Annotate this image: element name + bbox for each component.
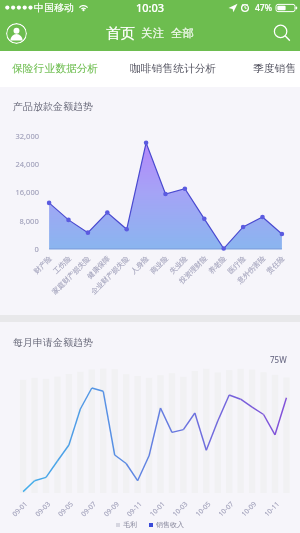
button[interactable]: 保险行业数据分析 bbox=[0, 53, 115, 85]
button[interactable]: Profile bbox=[6, 23, 27, 44]
staticText: 关注 bbox=[141, 26, 164, 40]
button[interactable]: 全部 bbox=[171, 26, 194, 42]
button[interactable]: 首页 bbox=[106, 24, 135, 42]
staticText: 季度销售 bbox=[253, 62, 297, 76]
staticText: 咖啡销售统计分析 bbox=[130, 62, 217, 76]
staticText: 保险行业数据分析 bbox=[12, 62, 99, 76]
button[interactable]: 关注 bbox=[141, 26, 164, 42]
staticText: 10:03 bbox=[136, 0, 165, 15]
button[interactable]: 季度销售 bbox=[237, 53, 300, 85]
button[interactable]: 咖啡销售统计分析 bbox=[114, 53, 233, 85]
staticText: 毛利 bbox=[123, 520, 137, 529]
button[interactable]: Search bbox=[271, 22, 293, 44]
staticText: 首页 bbox=[106, 24, 135, 42]
staticText: 产品放款金额趋势 bbox=[13, 100, 93, 113]
staticText: 中国移动 bbox=[34, 1, 74, 14]
staticText: 47% bbox=[255, 2, 272, 14]
staticText: 销售收入 bbox=[156, 520, 184, 529]
staticText: 每月申请金额趋势 bbox=[13, 336, 93, 349]
staticText: 75W bbox=[270, 354, 287, 365]
staticText: 全部 bbox=[171, 26, 194, 40]
